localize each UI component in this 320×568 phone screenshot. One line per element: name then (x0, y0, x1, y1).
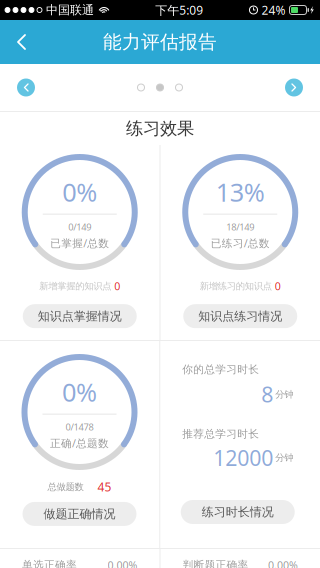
staticText: 练习效果 (126, 118, 194, 139)
staticText: 0 (275, 279, 281, 293)
staticText: 中国联通 (42, 3, 94, 17)
staticText: 0/1478 (65, 421, 93, 433)
staticText: 单选正确率 (22, 558, 77, 568)
staticText: 0 (114, 279, 120, 293)
staticText: 分钟 (275, 388, 293, 400)
staticText: 8 (261, 380, 273, 408)
staticText: 下午5:09 (155, 2, 203, 18)
button[interactable]: 返回 (0, 20, 44, 64)
staticText: 练习时长情况 (202, 505, 274, 519)
staticText: 知识点掌握情况 (38, 309, 122, 323)
button[interactable]: 知识点练习情况 (183, 304, 297, 328)
button[interactable]: 上一页 (8, 64, 44, 111)
staticText: 总做题数 (47, 481, 83, 493)
staticText: 45 (97, 479, 111, 495)
button[interactable]: 做题正确情况 (22, 502, 136, 526)
staticText: 新增掌握的知识点 (39, 280, 111, 292)
staticText: 能力评估报告 (103, 30, 217, 53)
button[interactable]: 下一页 (276, 64, 312, 111)
staticText: 13% (216, 175, 265, 209)
staticText: 24% (261, 2, 285, 18)
staticText: 你的总学习时长 (182, 363, 259, 376)
staticText: 知识点练习情况 (198, 309, 282, 323)
button[interactable]: 知识点掌握情况 (23, 304, 137, 328)
staticText: 判断题正确率 (182, 558, 248, 568)
staticText: 0% (62, 375, 97, 409)
staticText: 做题正确情况 (43, 507, 115, 521)
staticText: 0% (62, 175, 97, 209)
staticText: 12000 (213, 443, 273, 472)
staticText: 已掌握/总数 (50, 236, 109, 250)
staticText: 0/149 (68, 221, 91, 233)
staticText: 正确/总题数 (50, 436, 109, 450)
staticText: 分钟 (275, 452, 293, 463)
staticText: 0.00% (107, 558, 137, 568)
staticText: 已练习/总数 (211, 236, 270, 250)
button[interactable]: 练习时长情况 (181, 500, 295, 524)
staticText: 18/149 (226, 221, 254, 233)
staticText: 0.00% (268, 558, 298, 568)
staticText: 推荐总学习时长 (182, 427, 259, 440)
staticText: 新增练习的知识点 (200, 280, 272, 292)
